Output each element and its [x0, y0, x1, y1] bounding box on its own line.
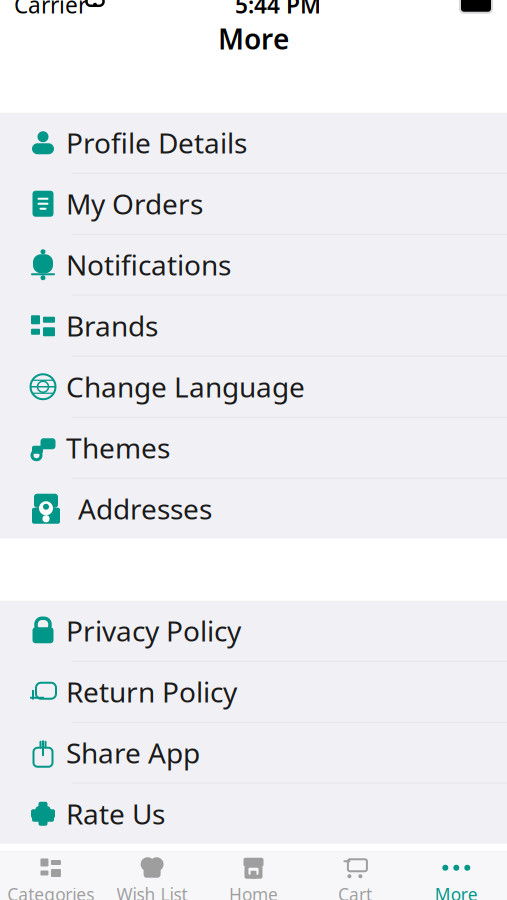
- button[interactable]: More: [406, 852, 507, 900]
- button[interactable]: Rate Us: [0, 784, 507, 844]
- button[interactable]: Cart: [304, 852, 406, 900]
- staticText: More: [435, 883, 478, 900]
- button[interactable]: Addresses: [0, 479, 507, 539]
- staticText: Carrier: [14, 0, 87, 20]
- button[interactable]: Categories: [0, 852, 101, 900]
- button[interactable]: Privacy Policy: [0, 601, 507, 662]
- staticText: Privacy Policy: [66, 612, 241, 649]
- staticText: 5:44 PM: [235, 0, 321, 20]
- staticText: Share App: [66, 734, 200, 771]
- staticText: Rate Us: [66, 795, 165, 832]
- button[interactable]: Themes: [0, 418, 507, 479]
- button[interactable]: Home: [203, 852, 304, 900]
- staticText: Change Language: [66, 368, 305, 405]
- staticText: Home: [229, 883, 278, 900]
- button[interactable]: Wish List: [101, 852, 203, 900]
- button[interactable]: Profile Details: [0, 113, 507, 174]
- button[interactable]: Change Language: [0, 357, 507, 418]
- button[interactable]: Return Policy: [0, 662, 507, 723]
- staticText: Themes: [66, 429, 170, 466]
- staticText: Return Policy: [66, 673, 237, 710]
- staticText: Wish List: [117, 883, 188, 900]
- staticText: Addresses: [78, 490, 212, 527]
- button[interactable]: Notifications: [0, 235, 507, 296]
- staticText: Categories: [7, 883, 94, 900]
- staticText: Cart: [338, 883, 372, 900]
- button[interactable]: Share App: [0, 723, 507, 784]
- staticText: My Orders: [66, 185, 203, 222]
- staticText: Notifications: [66, 246, 231, 283]
- button[interactable]: Brands: [0, 296, 507, 357]
- staticText: Brands: [66, 307, 158, 344]
- staticText: More: [218, 20, 289, 57]
- staticText: Profile Details: [66, 124, 247, 161]
- button[interactable]: My Orders: [0, 174, 507, 235]
